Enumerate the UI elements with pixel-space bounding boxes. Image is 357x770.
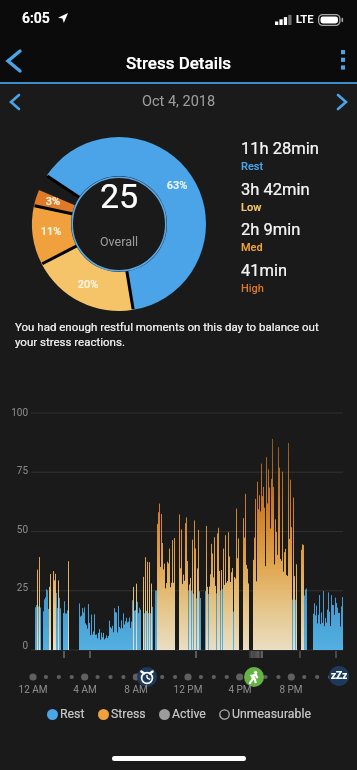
staticText: Med [241, 241, 263, 254]
staticText: Active [172, 707, 206, 721]
button[interactable]: Stress [98, 707, 146, 721]
staticText: 8 AM [106, 684, 166, 696]
staticText: 3% [33, 195, 73, 208]
staticText: Stress [111, 707, 146, 721]
staticText: LTE [296, 13, 314, 26]
staticText: 2h 9min [241, 220, 301, 239]
button[interactable]: sleep [329, 666, 349, 686]
staticText: zZz [331, 670, 348, 682]
button[interactable]: Previous day [0, 85, 40, 118]
staticText: 75 [0, 465, 28, 477]
staticText: 25 [79, 176, 159, 216]
button[interactable]: alarm [137, 667, 157, 687]
staticText: You had enough restful moments on this d… [15, 320, 335, 349]
button[interactable]: Back [0, 38, 40, 84]
button[interactable]: More options [313, 38, 357, 84]
staticText: 50 [0, 524, 28, 536]
staticText: 11% [31, 225, 71, 238]
staticText: 3h 42min [241, 180, 310, 199]
button[interactable]: Rest [47, 707, 85, 721]
button[interactable]: run [244, 667, 264, 687]
staticText: 20% [68, 278, 108, 291]
staticText: Unmeasurable [232, 707, 311, 721]
staticText: 41min [241, 261, 288, 280]
staticText: 12 PM [158, 684, 218, 696]
staticText: 4 AM [55, 684, 115, 696]
staticText: Oct 4, 2018 [142, 93, 216, 110]
button[interactable]: Active [159, 707, 206, 721]
staticText: Rest [241, 160, 264, 173]
staticText: Stress Details [126, 53, 232, 73]
staticText: Low [241, 201, 262, 214]
staticText: 100 [0, 407, 28, 419]
staticText: 8 PM [261, 684, 321, 696]
staticText: 6:05 [22, 10, 50, 26]
staticText: Rest [60, 707, 85, 721]
staticText: 12 AM [3, 684, 63, 696]
button[interactable]: Next day [317, 85, 357, 118]
staticText: 11h 28min [241, 139, 319, 158]
staticText: Overall [74, 234, 164, 249]
button[interactable]: Unmeasurable [219, 707, 311, 721]
staticText: 63% [157, 179, 197, 192]
staticText: 0 [0, 640, 28, 652]
staticText: 25 [0, 582, 28, 594]
staticText: High [241, 282, 264, 295]
staticText: 4 PM [210, 684, 270, 696]
